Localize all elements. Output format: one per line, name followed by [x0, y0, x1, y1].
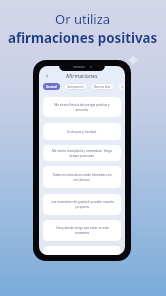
staticText: Buenos días [94, 85, 111, 89]
button[interactable]: Gratitud [118, 83, 125, 90]
staticText: Solo para mí [67, 85, 84, 89]
staticText: Invito paz y claridad. [67, 130, 97, 134]
staticText: Gratitud [121, 85, 122, 89]
staticText: Todas mis decisiones están alineadas con… [52, 173, 112, 182]
button[interactable]: Solo para mí [64, 83, 87, 90]
button[interactable]: Todas mis decisiones están alineadas con… [43, 166, 121, 188]
button[interactable]: General [43, 83, 60, 90]
button[interactable] [43, 246, 121, 255]
button[interactable]: Estoy donde tengo que estar, en este mom… [43, 220, 121, 241]
staticText: afirmaciones positivas [8, 29, 158, 47]
button[interactable]: Me siento tranquilo/a y centrado/a. Teng… [43, 145, 121, 161]
staticText: General [46, 85, 57, 89]
button[interactable]: Me siento lleno/a de energía positiva y … [43, 97, 121, 117]
staticText: Afirmaciones [66, 73, 98, 80]
button[interactable]: Buenos días [91, 83, 114, 90]
staticText: Or utiliza [55, 10, 111, 28]
button[interactable]: Invito paz y claridad. [43, 123, 121, 140]
staticText: Los momentos de gratitud suceden cuando … [51, 200, 114, 209]
button[interactable]: Los momentos de gratitud suceden cuando … [43, 194, 121, 215]
button[interactable]: Back [43, 72, 51, 80]
staticText: Estoy donde tengo que estar, en este mom… [56, 226, 109, 235]
staticText: Me siento lleno/a de energía positiva y … [54, 103, 110, 112]
staticText: Me siento tranquilo/a y centrado/a. Teng… [52, 149, 112, 158]
